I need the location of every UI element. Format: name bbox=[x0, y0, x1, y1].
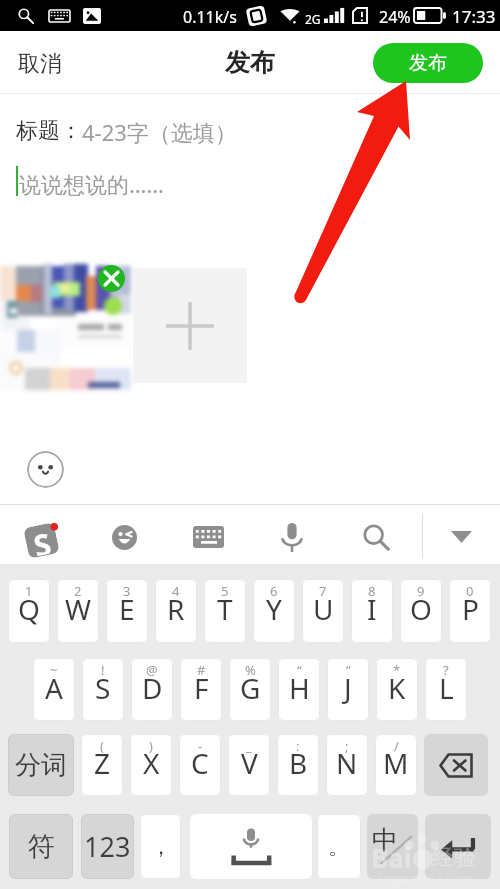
staticText: ( bbox=[100, 737, 104, 755]
button[interactable]: 符 bbox=[9, 814, 73, 879]
button[interactable]: Search bbox=[356, 517, 396, 557]
staticText: 123 bbox=[84, 828, 131, 865]
button[interactable]: Emoji bbox=[27, 451, 64, 488]
staticText: @ bbox=[146, 661, 158, 679]
button[interactable]: ? bbox=[425, 658, 467, 721]
staticText: O bbox=[410, 590, 432, 628]
button[interactable]: Hide keyboard bbox=[441, 517, 481, 557]
staticText: Y bbox=[266, 590, 282, 628]
staticText: E bbox=[119, 590, 135, 628]
button[interactable]: 3 bbox=[106, 579, 148, 643]
staticText: 24% bbox=[379, 6, 411, 28]
button[interactable]: _ bbox=[228, 734, 270, 796]
button[interactable]: “ bbox=[278, 658, 320, 721]
button[interactable]: Voice input bbox=[272, 517, 312, 557]
button[interactable]: ~ bbox=[33, 658, 75, 721]
button[interactable]: Remove photo bbox=[98, 265, 125, 292]
button[interactable]: % bbox=[229, 658, 271, 721]
button[interactable]: Backspace bbox=[424, 734, 488, 796]
staticText: - bbox=[198, 737, 203, 755]
staticText: 7 bbox=[319, 582, 327, 600]
button[interactable]: 7 bbox=[302, 579, 344, 643]
staticText: ? bbox=[443, 661, 449, 679]
button[interactable]: - bbox=[179, 734, 221, 796]
button[interactable]: 0 bbox=[449, 579, 491, 643]
staticText: 5 bbox=[221, 582, 229, 600]
staticText: 1 bbox=[25, 582, 33, 600]
staticText: ， bbox=[150, 833, 172, 861]
button[interactable]: 1 bbox=[8, 579, 50, 643]
staticText: R bbox=[167, 590, 185, 628]
button[interactable]: / bbox=[375, 734, 417, 796]
staticText: S bbox=[95, 669, 111, 707]
button[interactable]: 123 bbox=[81, 814, 134, 879]
staticText: 17:33 bbox=[452, 5, 496, 28]
staticText: : bbox=[296, 737, 300, 755]
staticText: A bbox=[45, 669, 63, 707]
button[interactable]: * bbox=[376, 658, 418, 721]
staticText: J bbox=[344, 669, 352, 707]
staticText: W bbox=[65, 590, 92, 628]
staticText: Q bbox=[18, 590, 40, 628]
button[interactable]: ， bbox=[140, 814, 181, 879]
staticText: 标题： bbox=[16, 117, 82, 145]
button[interactable]: Sogou input bbox=[20, 517, 64, 561]
button[interactable]: 取消 bbox=[18, 31, 62, 93]
button[interactable]: Emoji bbox=[104, 517, 144, 557]
button[interactable]: Chinese English toggle bbox=[367, 814, 418, 879]
button[interactable]: 分词 bbox=[8, 734, 74, 796]
staticText: V bbox=[241, 744, 258, 782]
staticText: D bbox=[142, 669, 163, 707]
button[interactable]: Space bbox=[190, 814, 312, 879]
staticText: 0 bbox=[466, 582, 474, 600]
button[interactable]: 4 bbox=[155, 579, 197, 643]
staticText: 4 bbox=[172, 582, 180, 600]
button[interactable]: Add photo bbox=[133, 268, 247, 383]
button[interactable]: ” bbox=[327, 658, 369, 721]
button[interactable]: ) bbox=[130, 734, 172, 796]
button[interactable]: 发布 bbox=[373, 43, 483, 83]
staticText: B bbox=[289, 744, 308, 782]
staticText: 6 bbox=[270, 582, 278, 600]
button[interactable]: 。 bbox=[317, 814, 361, 879]
button[interactable]: # bbox=[180, 658, 222, 721]
staticText: ; bbox=[345, 737, 349, 755]
staticText: T bbox=[217, 590, 233, 628]
staticText: Z bbox=[94, 744, 111, 782]
staticText: X bbox=[143, 744, 160, 782]
staticText: 0.11k/s bbox=[183, 6, 237, 28]
button[interactable]: 5 bbox=[204, 579, 246, 643]
button[interactable]: 6 bbox=[253, 579, 295, 643]
staticText: P bbox=[462, 590, 479, 628]
button[interactable]: ( bbox=[81, 734, 123, 796]
button[interactable]: Enter bbox=[425, 814, 491, 879]
staticText: 3 bbox=[123, 582, 131, 600]
staticText: ” bbox=[346, 661, 351, 679]
staticText: 符 bbox=[28, 830, 55, 864]
button[interactable]: Keyboard bbox=[188, 517, 228, 557]
button[interactable]: 9 bbox=[400, 579, 442, 643]
staticText: 2G bbox=[305, 11, 321, 27]
staticText: jingyan.baidu.com bbox=[378, 870, 474, 885]
button[interactable]: 2 bbox=[57, 579, 99, 643]
button[interactable]: : bbox=[277, 734, 319, 796]
staticText: * bbox=[393, 661, 401, 679]
staticText: H bbox=[289, 669, 310, 707]
staticText: Bai bbox=[371, 840, 412, 875]
staticText: S bbox=[30, 524, 53, 556]
staticText: N bbox=[336, 744, 358, 782]
staticText: 分词 bbox=[15, 749, 67, 782]
button[interactable]: 8 bbox=[351, 579, 393, 643]
button[interactable]: ; bbox=[326, 734, 368, 796]
staticText: U bbox=[313, 590, 334, 628]
staticText: 经验 bbox=[432, 844, 476, 872]
staticText: 4-23字（选填） bbox=[82, 117, 237, 147]
staticText: % bbox=[245, 661, 256, 679]
staticText: / bbox=[394, 737, 399, 755]
staticText: _ bbox=[246, 737, 252, 755]
staticText: L bbox=[439, 669, 454, 707]
staticText: 说说想说的…… bbox=[19, 169, 164, 199]
staticText: 2 bbox=[74, 582, 82, 600]
button[interactable]: @ bbox=[131, 658, 173, 721]
button[interactable]: ! bbox=[82, 658, 124, 721]
